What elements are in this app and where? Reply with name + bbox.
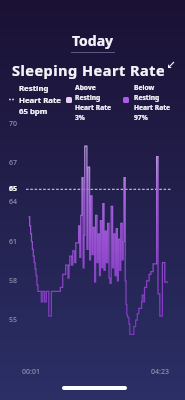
staticText: 70	[9, 119, 18, 129]
staticText: 55	[9, 315, 18, 325]
staticText: Resting Heart Rate 65 bpm	[19, 83, 62, 116]
staticText: 64	[9, 197, 18, 207]
staticText: 61	[9, 237, 18, 247]
staticText: Above Resting Heart Rate 3%	[75, 83, 112, 122]
staticText: Sleeping Heart Rate	[12, 60, 166, 80]
staticText: 04:23	[151, 367, 169, 377]
staticText: 58	[9, 276, 18, 286]
staticText: Below Resting Heart Rate 97%	[134, 83, 171, 122]
button[interactable]: Collapse chart	[166, 60, 175, 69]
button[interactable]: Today	[0, 31, 185, 53]
staticText: 00:01	[22, 367, 40, 377]
staticText: 67	[9, 158, 18, 168]
staticText: 65	[9, 184, 18, 194]
staticText: Today	[72, 31, 114, 50]
